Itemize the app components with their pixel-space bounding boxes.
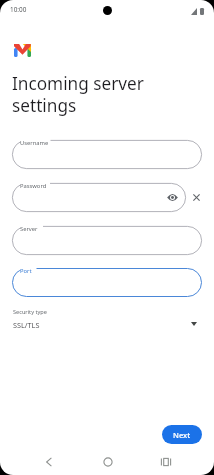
button[interactable]: Show password bbox=[166, 191, 179, 204]
staticText: Username bbox=[20, 139, 49, 147]
staticText: Server bbox=[20, 225, 38, 233]
button[interactable]: Password bbox=[12, 183, 186, 212]
staticText: Incoming server settings bbox=[12, 72, 164, 117]
button[interactable]: Next bbox=[162, 425, 202, 444]
staticText: SSL/TLS bbox=[13, 320, 40, 330]
button[interactable]: Clear password bbox=[190, 191, 203, 204]
button[interactable]: Server bbox=[12, 226, 202, 255]
staticText: 10:00 bbox=[10, 5, 27, 14]
button[interactable]: Port bbox=[12, 268, 202, 297]
button[interactable]: Security type bbox=[12, 305, 202, 333]
staticText: Next bbox=[173, 430, 191, 440]
button[interactable]: Recent apps bbox=[156, 452, 176, 472]
staticText: Port bbox=[20, 267, 32, 275]
button[interactable]: Back bbox=[39, 452, 59, 472]
staticText: Password bbox=[20, 182, 47, 190]
staticText: Security type bbox=[13, 308, 47, 316]
button[interactable]: Username bbox=[12, 140, 202, 169]
button[interactable]: Home bbox=[98, 452, 118, 472]
